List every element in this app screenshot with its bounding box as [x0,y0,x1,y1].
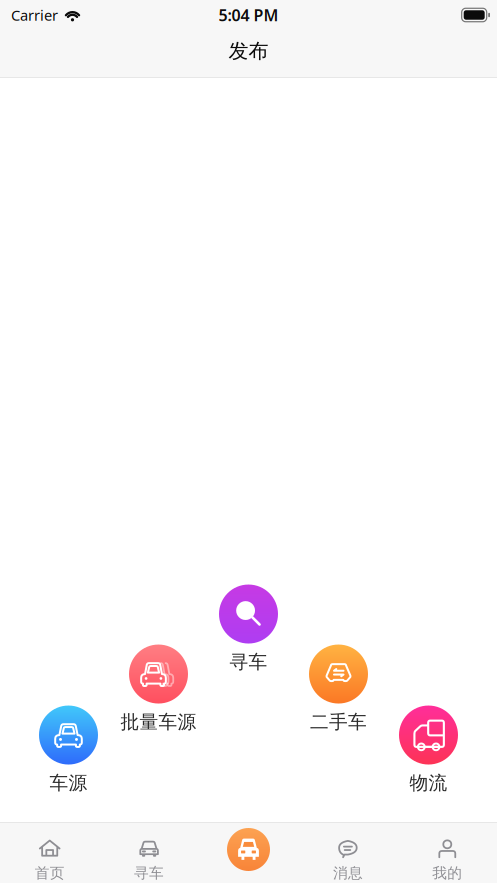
staticText: 首页 [35,864,65,882]
button[interactable]: 首页 [0,822,99,883]
staticText: Carrier [11,5,58,25]
button[interactable]: 寻车 [99,822,199,883]
button[interactable]: 发布 [227,828,270,871]
staticText: 批量车源 [120,710,196,733]
button[interactable]: 寻车 [219,584,278,673]
button[interactable]: 消息 [298,822,398,883]
button[interactable]: 物流 [399,705,458,794]
button[interactable]: 二手车 [309,644,368,733]
staticText: 5:04 PM [218,4,278,26]
button[interactable]: 批量车源 [120,644,196,733]
button[interactable]: 我的 [398,822,497,883]
staticText: 物流 [409,771,447,794]
staticText: 车源 [49,771,87,794]
staticText: 寻车 [229,650,267,673]
staticText: 二手车 [310,710,367,733]
staticText: 我的 [432,864,462,882]
button[interactable]: 车源 [39,705,98,794]
staticText: 发布 [228,39,268,63]
staticText: 寻车 [134,864,164,882]
staticText: 消息 [333,864,363,882]
